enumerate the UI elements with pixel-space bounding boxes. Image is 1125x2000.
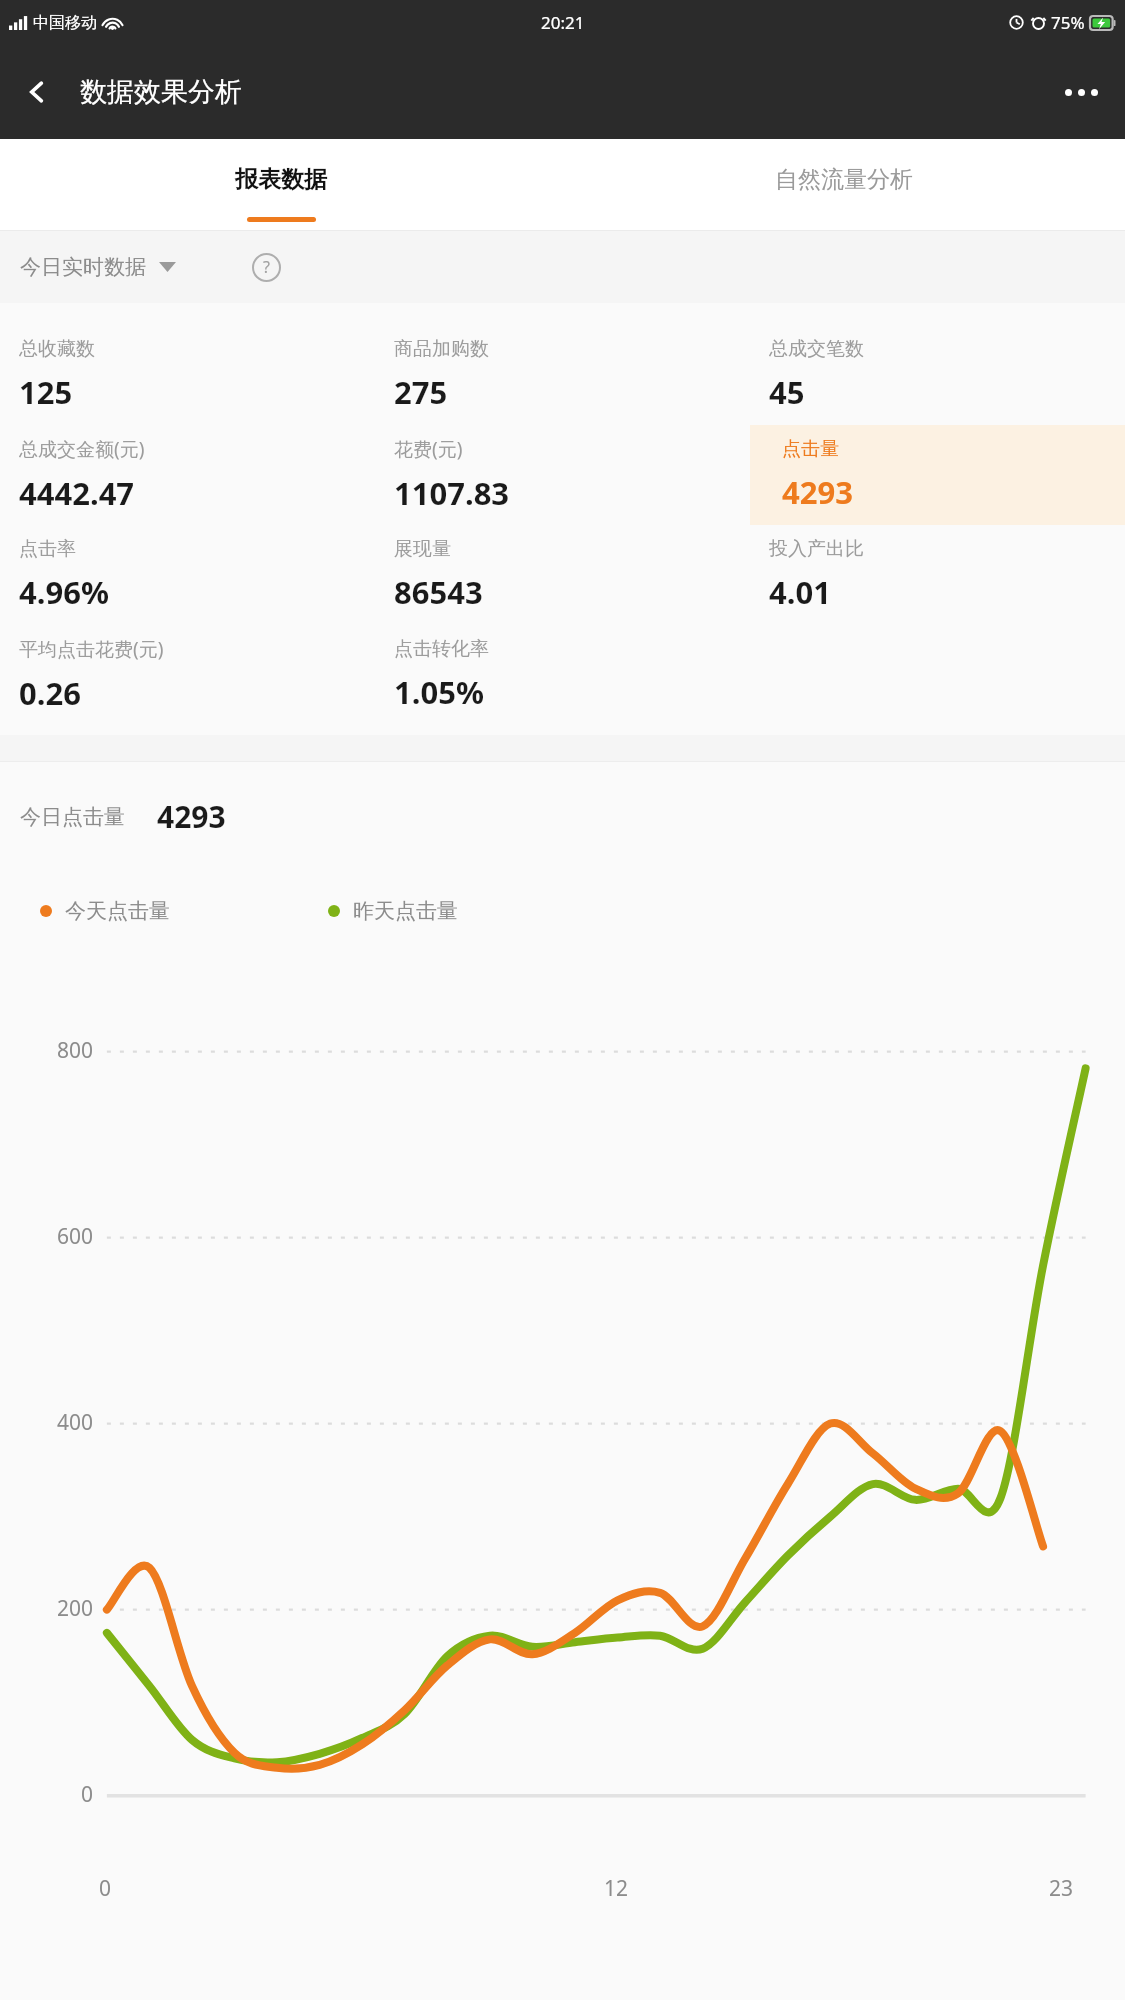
- button[interactable]: 报表数据: [0, 139, 562, 231]
- staticText: 商品加购数: [394, 337, 489, 361]
- staticText: 23: [1049, 1874, 1074, 1903]
- button[interactable]: Help: [242, 243, 290, 291]
- button[interactable]: 点击率: [0, 525, 375, 625]
- staticText: 4.96%: [19, 571, 109, 613]
- staticText: 中国移动: [33, 13, 97, 33]
- staticText: 0.26: [19, 672, 81, 714]
- button[interactable]: 展现量: [375, 525, 750, 625]
- staticText: 总成交金额(元): [19, 436, 145, 462]
- staticText: 1.05%: [394, 671, 484, 713]
- button[interactable]: 今日实时数据: [20, 254, 176, 280]
- button[interactable]: 平均点击花费(元): [0, 625, 375, 725]
- staticText: 400: [56, 1408, 93, 1437]
- staticText: 4293: [157, 796, 226, 837]
- staticText: 展现量: [394, 537, 451, 561]
- staticText: 自然流量分析: [775, 165, 913, 194]
- staticText: 4293: [782, 471, 853, 513]
- button[interactable]: 总成交金额(元): [0, 425, 375, 525]
- button[interactable]: 点击转化率: [375, 625, 750, 725]
- button[interactable]: 自然流量分析: [562, 139, 1125, 231]
- staticText: 今日实时数据: [20, 254, 146, 280]
- staticText: 报表数据: [235, 165, 327, 194]
- staticText: 4442.47: [19, 472, 135, 514]
- staticText: 总收藏数: [19, 337, 95, 361]
- button[interactable]: Back: [10, 65, 64, 119]
- button[interactable]: 点击量: [750, 425, 1125, 525]
- staticText: 800: [56, 1036, 93, 1065]
- staticText: 275: [394, 371, 448, 413]
- button[interactable]: 总收藏数: [0, 325, 375, 425]
- staticText: 0: [80, 1780, 93, 1809]
- staticText: 0: [99, 1874, 112, 1903]
- staticText: 点击量: [782, 437, 839, 461]
- button[interactable]: 投入产出比: [750, 525, 1125, 625]
- staticText: 600: [56, 1222, 93, 1251]
- button[interactable]: 花费(元): [375, 425, 750, 525]
- staticText: 今天点击量: [65, 898, 170, 924]
- staticText: 数据效果分析: [80, 75, 242, 109]
- staticText: 125: [19, 371, 73, 413]
- staticText: 平均点击花费(元): [19, 636, 164, 662]
- staticText: 1107.83: [394, 472, 510, 514]
- staticText: 点击转化率: [394, 637, 489, 661]
- button[interactable]: 总成交笔数: [750, 325, 1125, 425]
- staticText: 200: [56, 1594, 93, 1623]
- staticText: 86543: [394, 571, 483, 613]
- button[interactable]: 商品加购数: [375, 325, 750, 425]
- button[interactable]: More options: [1051, 62, 1111, 122]
- staticText: 昨天点击量: [353, 898, 458, 924]
- staticText: 花费(元): [394, 436, 463, 462]
- staticText: 今日点击量: [20, 804, 125, 830]
- staticText: 总成交笔数: [769, 337, 864, 361]
- staticText: 投入产出比: [769, 537, 864, 561]
- staticText: 75%: [1051, 11, 1085, 34]
- staticText: 点击率: [19, 537, 76, 561]
- staticText: 4.01: [769, 571, 831, 613]
- staticText: ?: [263, 256, 270, 278]
- staticText: 12: [604, 1874, 629, 1903]
- staticText: 45: [769, 371, 805, 413]
- staticText: 20:21: [541, 11, 585, 34]
